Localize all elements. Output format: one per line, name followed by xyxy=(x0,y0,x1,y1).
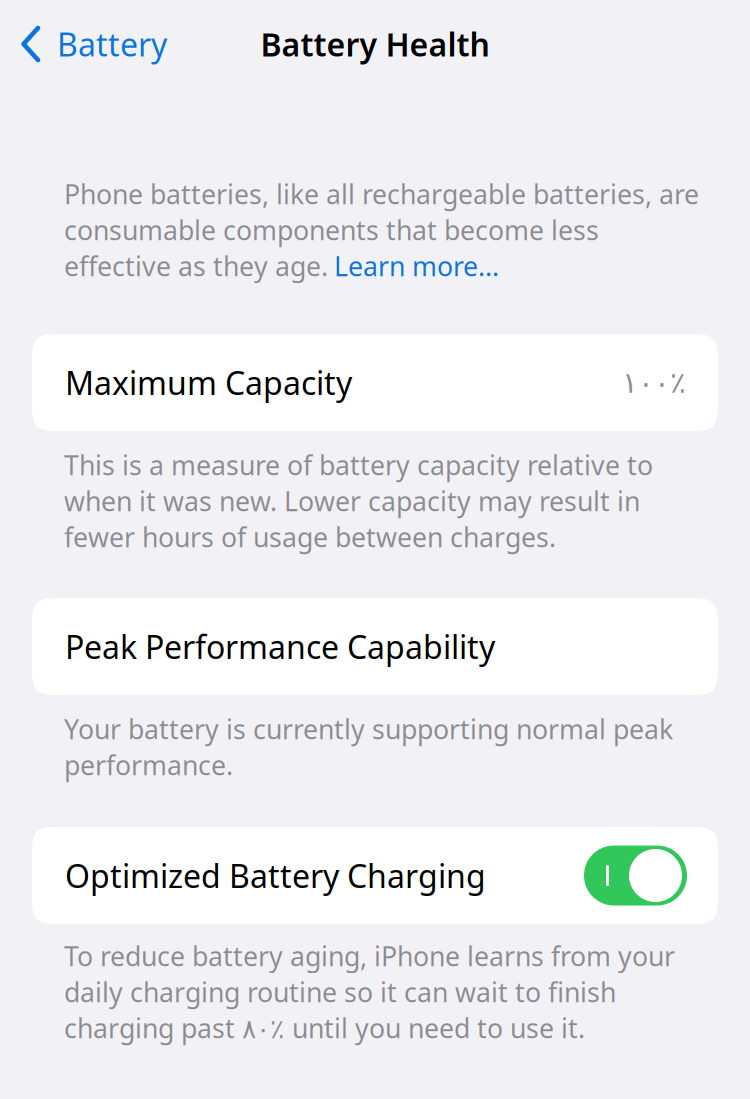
staticText: Peak Performance Capability xyxy=(65,625,495,668)
staticText: Battery Health xyxy=(260,23,489,65)
staticText: Maximum Capacity xyxy=(65,361,352,404)
staticText: daily charging routine so it can wait to… xyxy=(64,974,616,1010)
staticText: This is a measure of battery capacity re… xyxy=(64,447,653,483)
staticText: To reduce battery aging, iPhone learns f… xyxy=(64,938,675,974)
button[interactable]: Optimized Battery Charging xyxy=(32,827,718,924)
staticText: Optimized Battery Charging xyxy=(65,854,486,897)
staticText: consumable components that become less xyxy=(64,212,599,248)
staticText: Learn more... xyxy=(334,248,499,284)
staticText: performance. xyxy=(64,747,233,783)
button[interactable]: Battery xyxy=(0,0,181,88)
button[interactable]: Peak Performance Capability xyxy=(32,598,718,695)
staticText: effective as they age. xyxy=(64,248,328,284)
staticText: Your battery is currently supporting nor… xyxy=(64,711,673,747)
staticText: fewer hours of usage between charges. xyxy=(64,519,556,555)
button[interactable]: Learn more... xyxy=(328,248,499,284)
staticText: Phone batteries, like all rechargeable b… xyxy=(64,176,699,212)
button[interactable]: Maximum Capacity xyxy=(32,334,718,431)
staticText: Battery xyxy=(57,23,167,65)
staticText: charging past ۸۰٪ until you need to use … xyxy=(64,1010,585,1046)
staticText: when it was new. Lower capacity may resu… xyxy=(64,483,640,519)
staticText: ۱۰۰٪ xyxy=(622,366,686,399)
